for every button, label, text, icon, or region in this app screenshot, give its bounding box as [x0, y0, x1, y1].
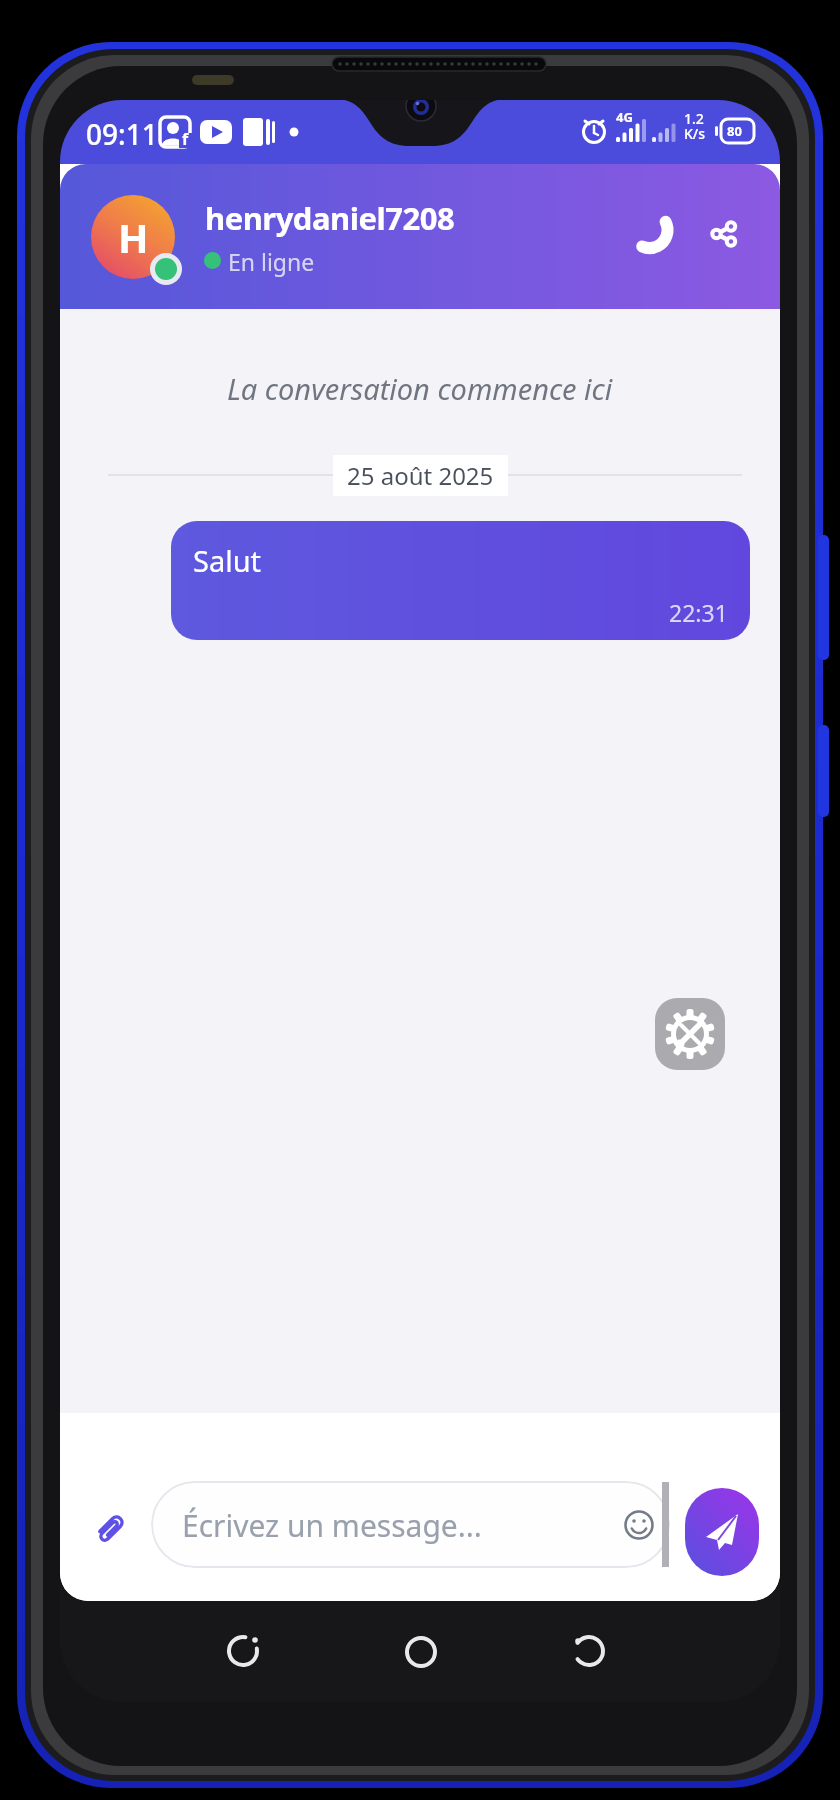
button[interactable]	[655, 998, 725, 1070]
staticText: Salut	[193, 541, 262, 580]
staticText: La conversation commence ici	[227, 369, 613, 408]
button[interactable]	[625, 208, 675, 258]
staticText: H	[118, 210, 149, 264]
staticText: 4G	[616, 108, 633, 126]
staticText: 09:11	[86, 115, 158, 153]
staticText: 22:31	[669, 597, 728, 628]
button[interactable]	[685, 1488, 759, 1576]
button[interactable]: Salut	[171, 521, 750, 640]
button[interactable]: Écrivez un message...	[151, 1481, 670, 1568]
button[interactable]: H	[91, 195, 175, 279]
staticText: f	[182, 128, 189, 150]
button[interactable]	[88, 1507, 132, 1551]
staticText: henrydaniel7208	[205, 197, 455, 239]
button[interactable]	[572, 1634, 608, 1670]
staticText: En ligne	[228, 246, 315, 277]
staticText: 1.2 K/s	[684, 109, 706, 143]
staticText: 25 août 2025	[347, 459, 494, 492]
staticText: Écrivez un message...	[182, 1505, 482, 1546]
button[interactable]	[403, 1635, 439, 1671]
button[interactable]	[708, 214, 752, 258]
staticText: 80	[727, 122, 742, 140]
button[interactable]	[226, 1634, 262, 1670]
